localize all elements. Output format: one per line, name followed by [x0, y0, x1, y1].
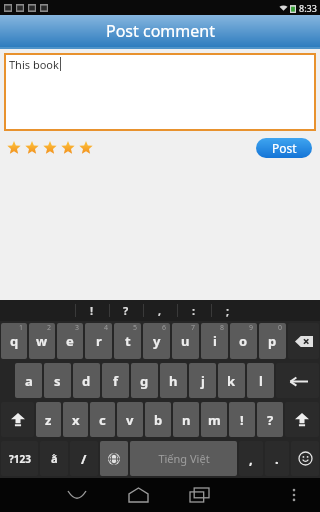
staticText: g [140, 372, 149, 390]
staticText: Post comment [106, 20, 215, 42]
button[interactable] [24, 140, 40, 156]
button[interactable]: ? [109, 300, 143, 321]
staticText: ! [90, 303, 94, 318]
button[interactable]: u [172, 323, 199, 359]
button[interactable] [42, 140, 58, 156]
button[interactable]: ?123 [1, 441, 38, 476]
button[interactable]: key [100, 441, 128, 476]
staticText: 9 [249, 323, 254, 333]
button[interactable]: key [1, 402, 34, 437]
button[interactable]: / [70, 441, 98, 476]
staticText: 2 [47, 323, 52, 333]
staticText: m [208, 411, 221, 429]
button[interactable]: r [85, 323, 112, 359]
button[interactable]: Home [119, 478, 157, 512]
staticText: n [182, 411, 191, 429]
staticText: i [213, 332, 217, 350]
staticText: k [227, 372, 236, 390]
staticText: / [81, 450, 87, 468]
button[interactable] [6, 140, 22, 156]
button[interactable]: o [230, 323, 257, 359]
button[interactable]: v [117, 402, 143, 437]
button[interactable]: t [114, 323, 141, 359]
button[interactable]: y [143, 323, 170, 359]
staticText: j [201, 372, 205, 390]
button[interactable]: n [173, 402, 199, 437]
button[interactable]: l [247, 363, 274, 398]
staticText: e [66, 332, 74, 350]
button[interactable]: key [291, 441, 319, 476]
button[interactable]: key [285, 402, 319, 437]
staticText: This book [9, 57, 59, 72]
staticText: p [268, 332, 277, 350]
staticText: w [36, 332, 48, 350]
button[interactable] [78, 140, 94, 156]
button[interactable]: h [160, 363, 187, 398]
button[interactable]: : [177, 300, 211, 321]
staticText: 8 [220, 323, 225, 333]
staticText: 7 [191, 323, 196, 333]
button[interactable]: c [90, 402, 115, 437]
staticText: 4 [104, 323, 109, 333]
button[interactable]: i [201, 323, 228, 359]
staticText: . [275, 450, 279, 468]
button[interactable]: ? [257, 402, 283, 437]
staticText: : [192, 303, 196, 318]
staticText: b [154, 411, 163, 429]
button[interactable]: ; [211, 300, 245, 321]
staticText: 1 [19, 323, 24, 333]
button[interactable]: ! [75, 300, 109, 321]
staticText: l [259, 372, 263, 390]
staticText: v [126, 411, 134, 429]
button[interactable]: Back [58, 478, 96, 512]
staticText: 8:33 [299, 2, 317, 14]
button[interactable]: m [201, 402, 227, 437]
button[interactable]: e [57, 323, 83, 359]
staticText: Tiếng Việt [158, 451, 210, 466]
staticText: x [72, 411, 80, 429]
staticText: a [25, 372, 33, 390]
staticText: r [96, 332, 102, 350]
staticText: 5 [133, 323, 138, 333]
button[interactable]: , [143, 300, 177, 321]
staticText: 6 [162, 323, 167, 333]
button[interactable]: key [288, 323, 319, 359]
button[interactable]: z [36, 402, 61, 437]
button[interactable]: Post [256, 138, 312, 158]
staticText: 0 [278, 323, 283, 333]
button[interactable]: f [102, 363, 129, 398]
staticText: t [125, 332, 131, 350]
button[interactable]: w [29, 323, 55, 359]
staticText: ?123 [9, 452, 31, 466]
button[interactable]: Tiếng Việt [130, 441, 237, 476]
staticText: ằ [51, 451, 58, 466]
staticText: ? [123, 303, 129, 318]
button[interactable]: This book [4, 53, 316, 131]
button[interactable]: . [265, 441, 289, 476]
staticText: ; [226, 303, 230, 318]
button[interactable]: q [1, 323, 27, 359]
staticText: h [169, 372, 178, 390]
button[interactable]: j [189, 363, 216, 398]
staticText: ! [240, 411, 244, 429]
button[interactable]: Recent apps [180, 478, 218, 512]
button[interactable]: g [131, 363, 158, 398]
button[interactable]: , [239, 441, 263, 476]
staticText: u [181, 332, 190, 350]
button[interactable] [60, 140, 76, 156]
button[interactable]: ! [229, 402, 255, 437]
button[interactable]: a [15, 363, 42, 398]
button[interactable]: d [73, 363, 100, 398]
staticText: y [153, 332, 161, 350]
button[interactable]: x [63, 402, 88, 437]
staticText: , [249, 450, 253, 468]
button[interactable]: ằ [40, 441, 68, 476]
button[interactable]: key [276, 363, 319, 398]
staticText: ? [267, 411, 274, 429]
staticText: 3 [75, 323, 80, 333]
button[interactable]: p [259, 323, 286, 359]
button[interactable]: k [218, 363, 245, 398]
button[interactable]: b [145, 402, 171, 437]
button[interactable]: More options [279, 478, 309, 512]
button[interactable]: s [44, 363, 71, 398]
